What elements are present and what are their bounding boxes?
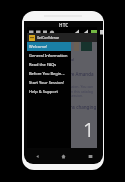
staticText: ns changing — [70, 104, 97, 110]
button[interactable]: GetConfidence — [27, 33, 97, 42]
staticText: Start Your Session! — [29, 80, 64, 85]
button[interactable]: Back — [31, 150, 43, 162]
staticText: 1 — [83, 116, 95, 143]
staticText: General Information — [29, 53, 68, 58]
staticText: al — [71, 57, 75, 62]
staticText: Read the FAQs — [29, 62, 57, 67]
staticText: HTC — [59, 22, 69, 28]
button[interactable]: Welcome! — [27, 42, 71, 51]
staticText: Help & Support — [29, 89, 58, 94]
button[interactable]: Read the FAQs — [27, 60, 71, 69]
button[interactable]: General Information — [27, 51, 71, 60]
button[interactable]: Recent apps — [84, 150, 96, 162]
button[interactable]: Before You Begin... — [27, 69, 71, 78]
staticText: Welcome! — [29, 44, 48, 49]
button[interactable]: Start Your Session! — [27, 78, 71, 87]
staticText: re Amanda — [70, 71, 94, 77]
button[interactable]: Help & Support — [27, 87, 71, 96]
staticText: ssion. You can in this catalog session. — [70, 84, 94, 98]
button[interactable]: Home — [57, 150, 69, 162]
staticText: Before You Begin... — [29, 71, 65, 76]
staticText: GetConfidence — [37, 36, 60, 40]
